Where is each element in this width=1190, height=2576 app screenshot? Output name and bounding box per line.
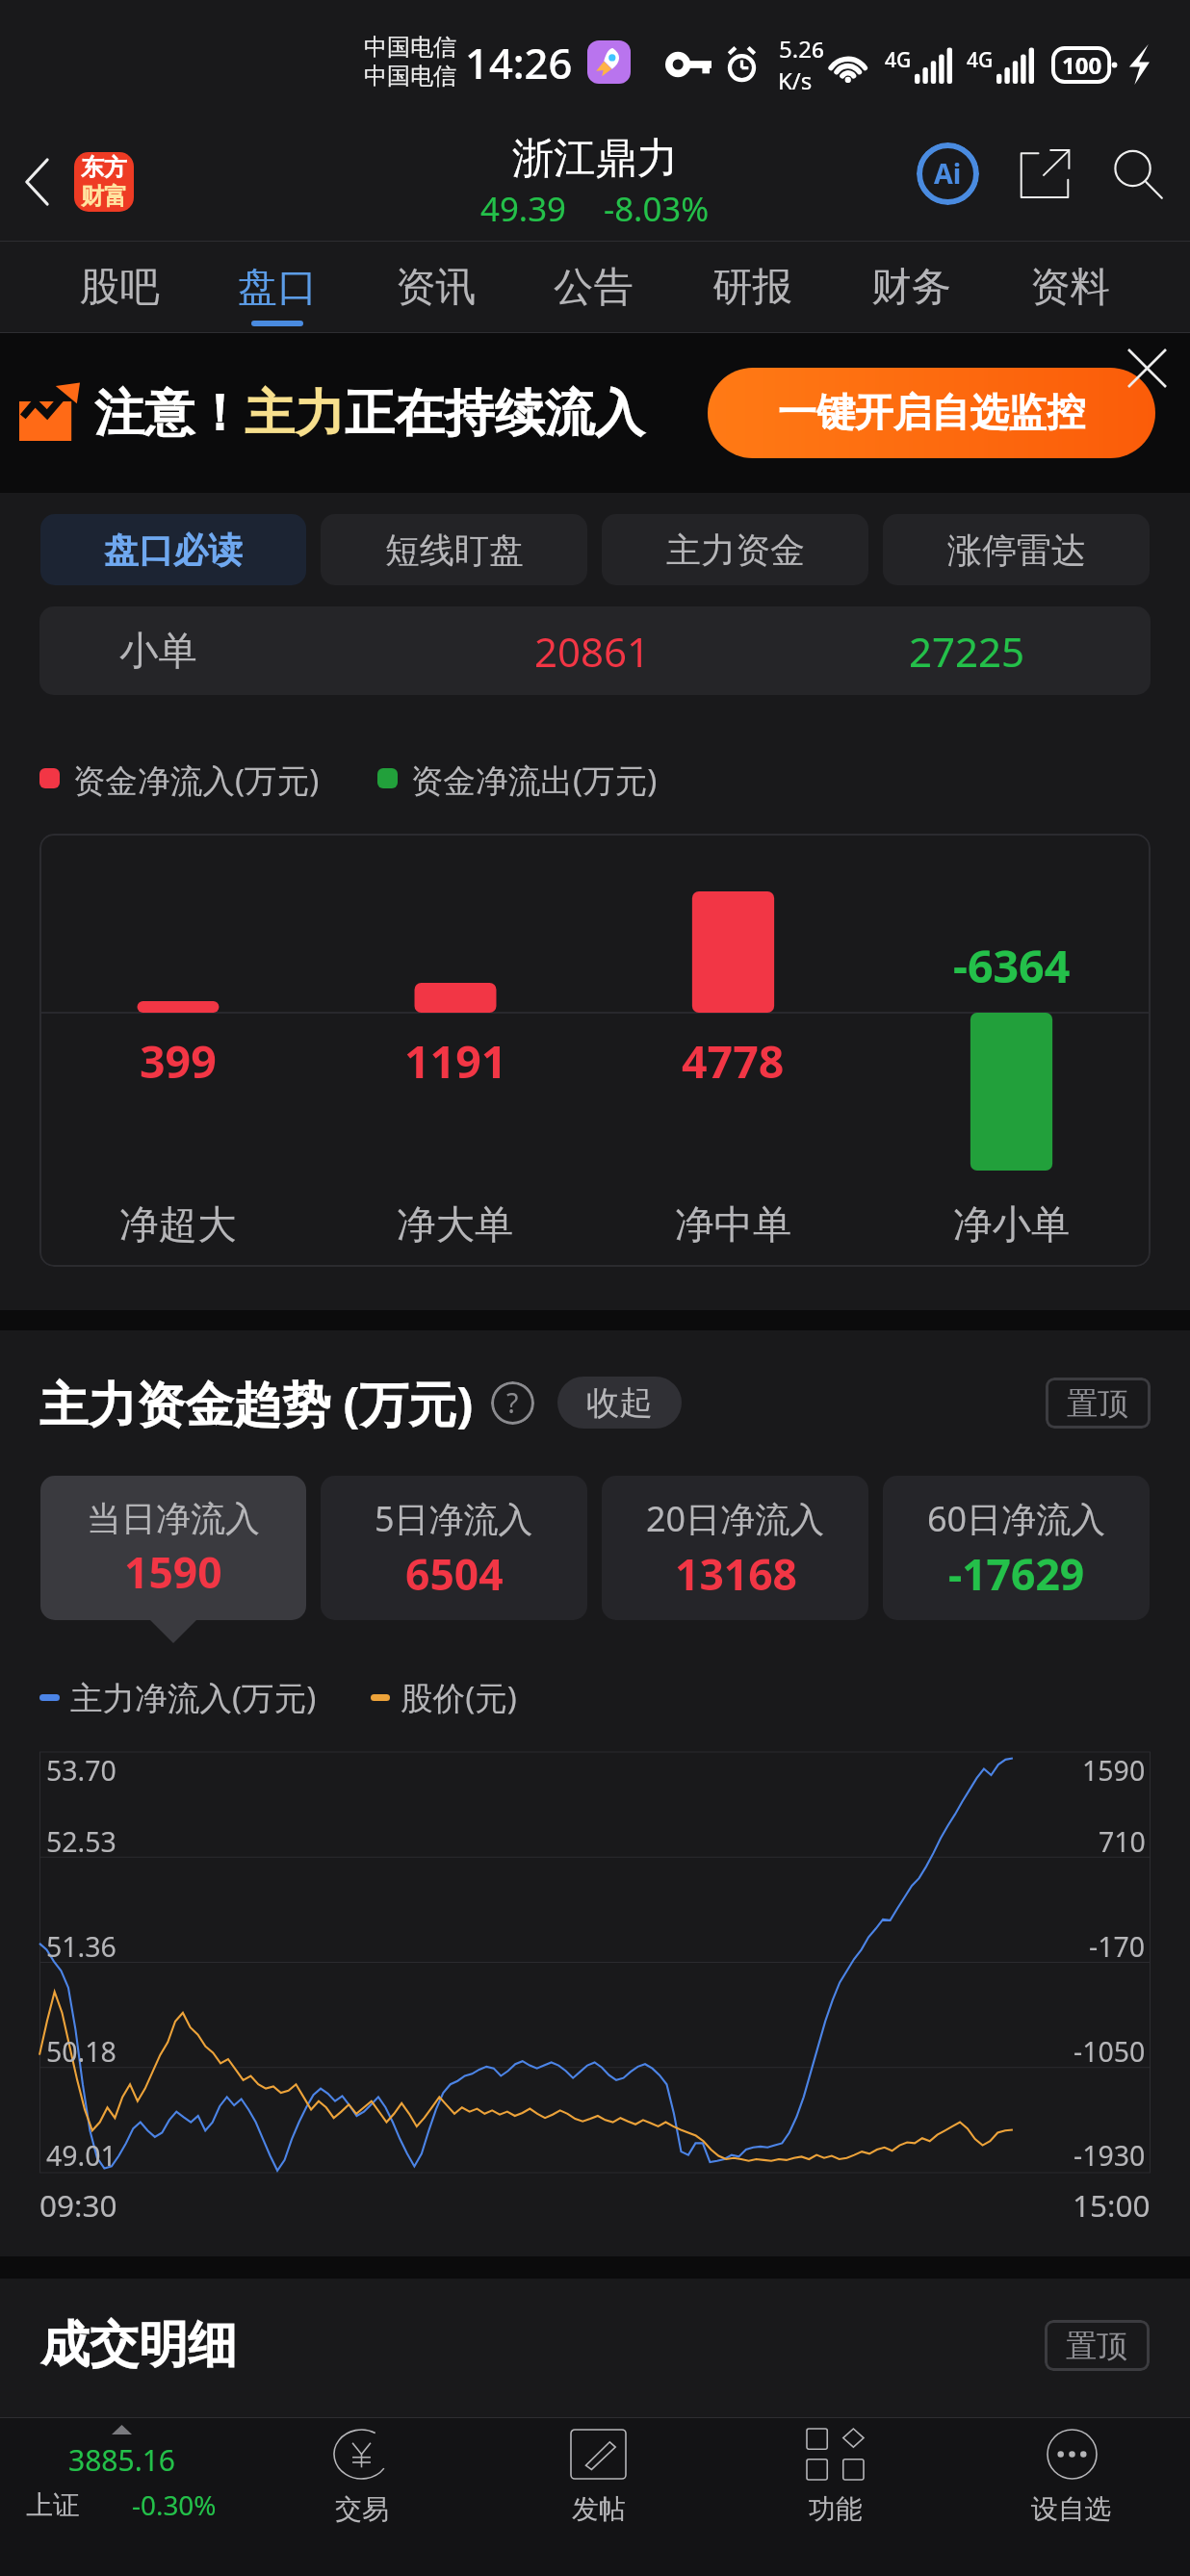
staticText: 27225	[909, 624, 1025, 679]
button[interactable]: 发帖	[479, 2418, 716, 2576]
button[interactable]: 股吧	[40, 241, 198, 333]
staticText: -1050	[1074, 2033, 1146, 2071]
button[interactable]: 5日净流入	[321, 1476, 587, 1620]
staticText: ?	[506, 1384, 519, 1422]
button[interactable]: 短线盯盘	[321, 514, 587, 585]
staticText: 100	[1062, 49, 1102, 81]
staticText: 主力净流入(万元)	[70, 1675, 317, 1719]
button[interactable]: 盘口	[198, 241, 356, 333]
staticText: 交易	[335, 2492, 389, 2526]
staticText: 一键开启自选监控	[778, 389, 1086, 437]
button[interactable]: 一键开启自选监控	[708, 368, 1155, 458]
staticText: -170	[1089, 1928, 1146, 1966]
button[interactable]: 20日净流入	[602, 1476, 868, 1620]
button[interactable]: 60日净流入	[883, 1476, 1150, 1620]
staticText: 净超大	[119, 1200, 237, 1249]
staticText: 4778	[682, 1030, 785, 1091]
staticText: -1930	[1074, 2137, 1146, 2173]
staticText: 中国电信	[364, 33, 456, 62]
staticText: 净大单	[397, 1200, 514, 1249]
staticText: 主力	[245, 382, 345, 445]
button[interactable]: 置顶	[1046, 1378, 1151, 1429]
staticText: 收起	[586, 1382, 653, 1424]
button[interactable]: 小单	[39, 606, 1151, 695]
staticText: 研报	[712, 262, 792, 312]
staticText: 51.36	[46, 1928, 116, 1966]
staticText: 5.2	[779, 33, 812, 64]
button[interactable]: 当日净流入	[40, 1476, 306, 1620]
staticText: 功能	[809, 2492, 863, 2526]
staticText: 净小单	[953, 1200, 1071, 1249]
staticText: Ai	[934, 155, 962, 193]
staticText: 公告	[554, 262, 634, 312]
staticText: 6	[812, 35, 824, 64]
staticText: 资讯	[396, 262, 476, 312]
staticText: 09:30	[39, 2184, 117, 2226]
staticText: 399	[140, 1030, 217, 1091]
staticText: 资金净流入(万元)	[73, 758, 320, 798]
staticText: 股价(元)	[401, 1675, 517, 1719]
staticText: 4G	[967, 46, 994, 74]
staticText: 发帖	[572, 2492, 626, 2526]
button[interactable]: Close	[1112, 333, 1181, 402]
button[interactable]: 东方	[74, 152, 134, 212]
staticText: 15:00	[1073, 2184, 1151, 2226]
staticText: 浙江鼎力	[512, 132, 679, 184]
staticText: 资金净流出(万元)	[411, 758, 658, 798]
button[interactable]: 涨停雷达	[883, 514, 1150, 585]
button[interactable]: 公告	[514, 241, 673, 333]
button[interactable]: 3885.16	[0, 2418, 243, 2576]
staticText: 小单	[119, 627, 197, 676]
staticText: K/s	[778, 64, 813, 96]
button[interactable]: 置顶	[1045, 2320, 1150, 2371]
button[interactable]: 主力资金	[602, 514, 868, 585]
staticText: 中国电信	[364, 62, 456, 90]
staticText: 注意！	[94, 382, 245, 445]
staticText: 盘口	[238, 262, 318, 312]
staticText: 股吧	[80, 262, 160, 312]
staticText: 盘口必读	[104, 528, 243, 572]
button[interactable]: Help	[491, 1381, 534, 1425]
button[interactable]: 研报	[673, 241, 832, 333]
staticText: -8.03%	[604, 186, 710, 231]
staticText: 6504	[405, 1545, 504, 1603]
staticText: 50.18	[46, 2033, 116, 2071]
button[interactable]: Search	[1085, 106, 1190, 241]
staticText: 4G	[885, 46, 912, 74]
button[interactable]: 功能	[716, 2418, 953, 2576]
staticText: 1590	[124, 1543, 222, 1601]
staticText: 3885.16	[68, 2440, 175, 2480]
staticText: 置顶	[1067, 1384, 1129, 1423]
button[interactable]: AI assistant	[891, 106, 1004, 241]
button[interactable]: 资讯	[356, 241, 514, 333]
staticText: 财富	[81, 182, 127, 211]
button[interactable]: 收起	[557, 1377, 682, 1429]
staticText: 东方	[81, 153, 127, 182]
staticText: 13168	[675, 1545, 797, 1603]
staticText: 52.53	[46, 1823, 116, 1861]
staticText: 短线盯盘	[385, 528, 524, 572]
staticText: 1191	[404, 1030, 507, 1091]
staticText: 成交明细	[40, 2314, 237, 2376]
staticText: -17629	[948, 1545, 1085, 1603]
staticText: 涨停雷达	[947, 528, 1086, 572]
button[interactable]: Back	[0, 115, 74, 249]
staticText: 上证	[26, 2488, 80, 2522]
staticText: 710	[1099, 1823, 1146, 1861]
button[interactable]: 交易	[243, 2418, 479, 2576]
button[interactable]: 财务	[832, 241, 991, 333]
staticText: 53.70	[46, 1752, 116, 1790]
button[interactable]: 盘口必读	[40, 514, 306, 585]
staticText: 20861	[534, 624, 651, 679]
button[interactable]: 资料	[991, 241, 1150, 333]
staticText: 正在持续流入	[345, 382, 645, 445]
staticText: 5日净流入	[375, 1495, 533, 1542]
button[interactable]: 设自选	[953, 2418, 1190, 2576]
staticText: 财务	[871, 262, 951, 312]
staticText: 14:26	[465, 34, 573, 90]
staticText: 60日净流入	[927, 1495, 1106, 1542]
staticText: 主力资金趋势 (万元)	[39, 1370, 474, 1436]
staticText: 49.39	[480, 186, 566, 231]
button[interactable]: Share	[1004, 106, 1085, 241]
staticText: 49.01	[46, 2137, 116, 2173]
